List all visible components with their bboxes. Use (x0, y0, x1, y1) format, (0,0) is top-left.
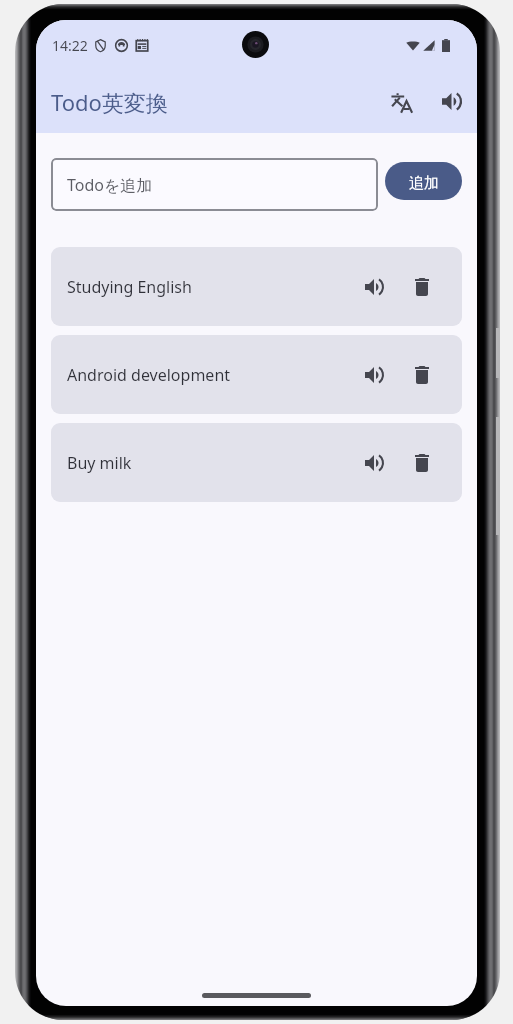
staticText: Todo英変換 (51, 87, 168, 117)
button[interactable]: Translate (380, 82, 424, 126)
button[interactable]: Read aloud (429, 82, 473, 126)
button[interactable]: Delete (402, 443, 442, 483)
staticText: 14:22 (52, 36, 88, 55)
staticText: Buy milk (67, 452, 132, 474)
button[interactable]: Todoを追加 (51, 158, 378, 211)
staticText: Todoを追加 (67, 174, 153, 196)
button[interactable]: Delete (402, 355, 442, 395)
button[interactable]: Read aloud (354, 355, 394, 395)
button[interactable]: Studying English (51, 247, 462, 326)
button[interactable]: Read aloud (354, 267, 394, 307)
staticText: Studying English (67, 276, 192, 298)
button[interactable]: Delete (402, 267, 442, 307)
button[interactable]: Android development (51, 335, 462, 414)
button[interactable]: 追加 (385, 162, 462, 200)
staticText: 追加 (409, 174, 439, 193)
staticText: Android development (67, 364, 231, 386)
button[interactable]: Read aloud (354, 443, 394, 483)
button[interactable]: Buy milk (51, 423, 462, 502)
